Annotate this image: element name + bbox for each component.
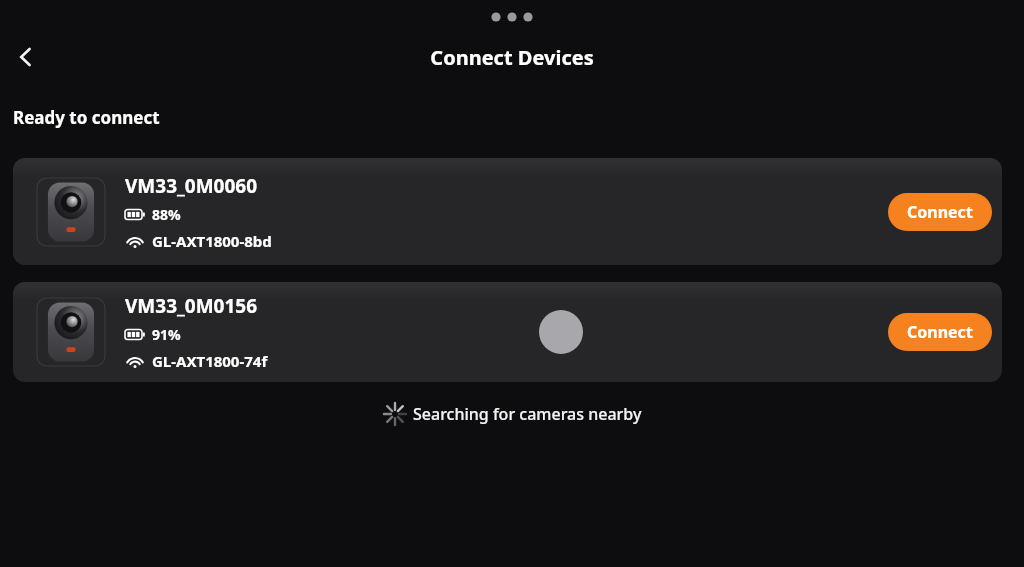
staticText: 88% — [152, 205, 181, 224]
staticText: GL-AXT1800-74f — [152, 351, 268, 371]
staticText: GL-AXT1800-8bd — [152, 231, 272, 251]
staticText: Connect — [907, 201, 973, 223]
button[interactable]: Back — [4, 35, 48, 79]
button[interactable]: Connect — [888, 313, 992, 351]
staticText: 91% — [152, 325, 181, 344]
button[interactable]: VM33_0M0156 — [13, 282, 1002, 382]
staticText: Connect — [907, 321, 973, 343]
staticText: Connect Devices — [430, 44, 594, 71]
staticText: Searching for cameras nearby — [413, 403, 642, 425]
staticText: Ready to connect — [13, 106, 160, 129]
staticText: VM33_0M0156 — [125, 293, 258, 319]
button[interactable]: Connect — [888, 193, 992, 231]
button[interactable]: VM33_0M0060 — [13, 158, 1002, 265]
staticText: VM33_0M0060 — [125, 173, 258, 199]
